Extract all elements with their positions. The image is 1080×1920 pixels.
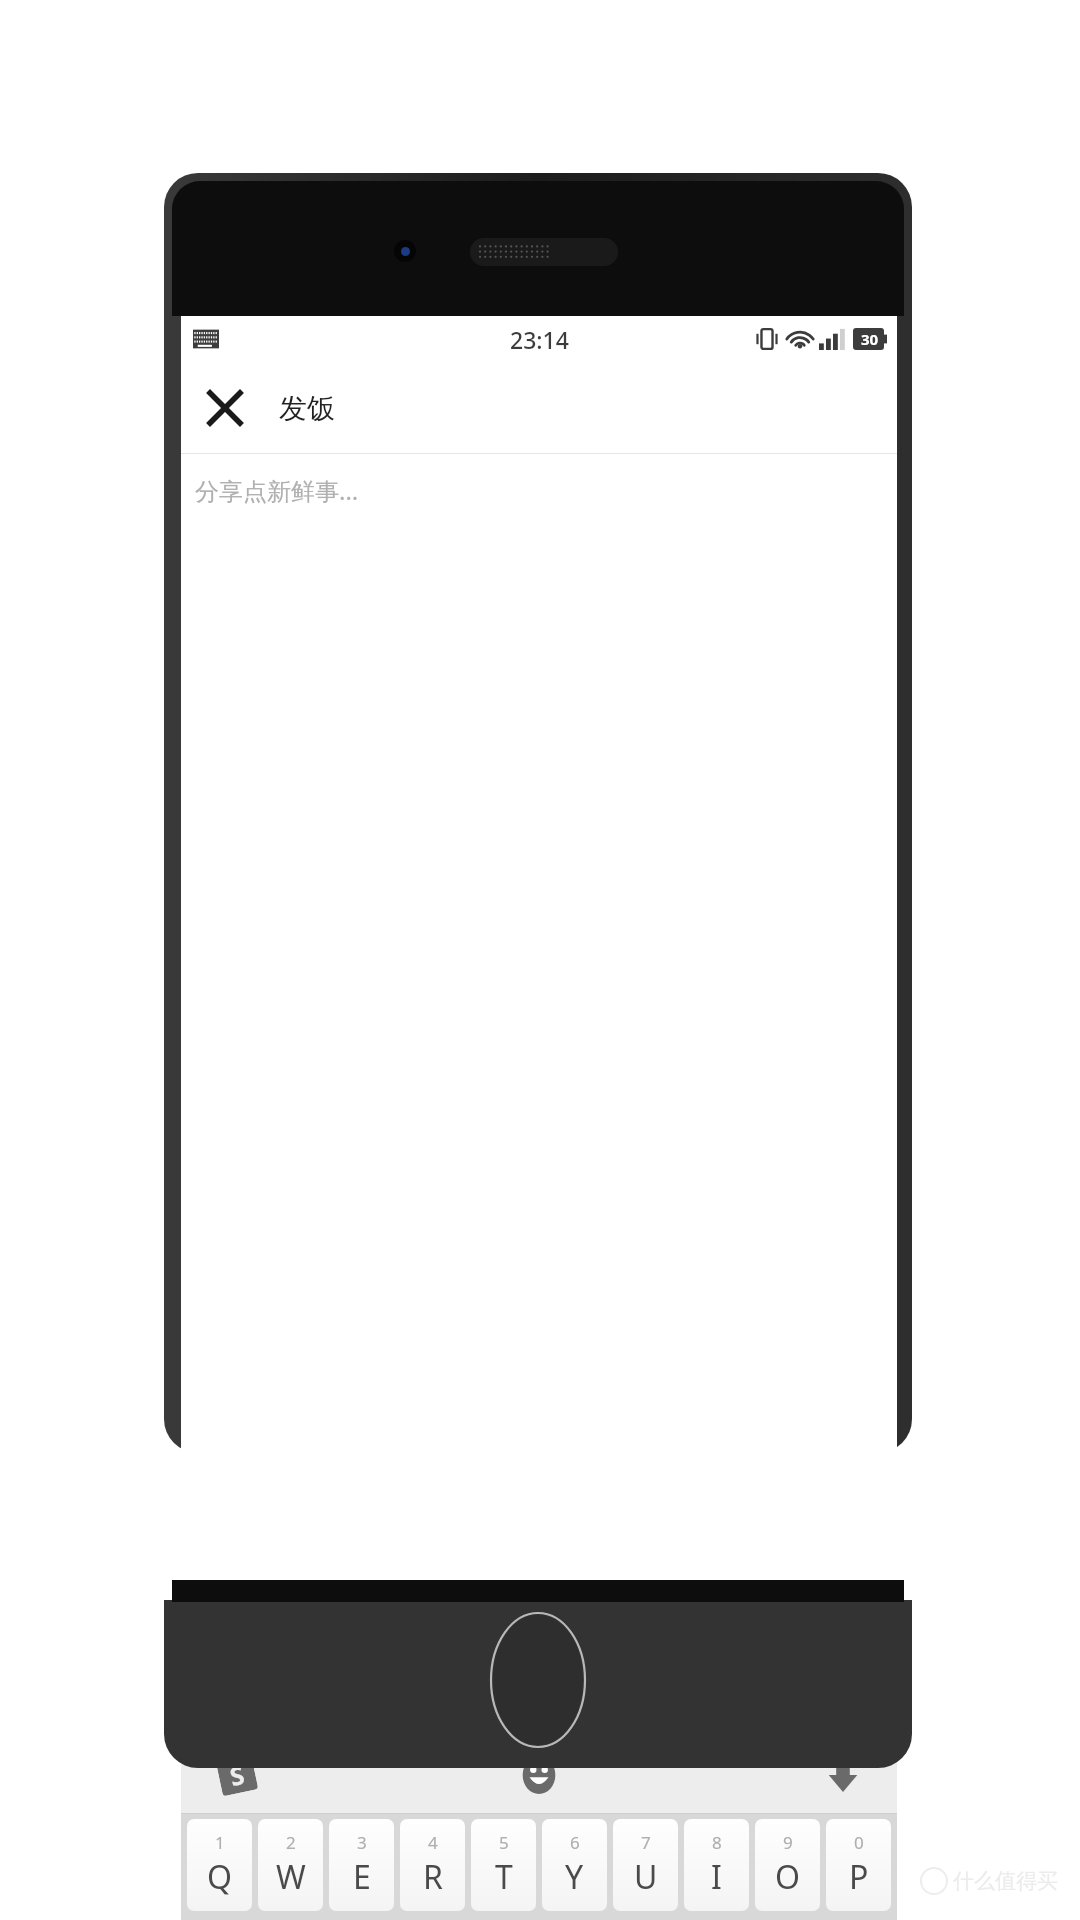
staticText: S bbox=[227, 1757, 247, 1793]
button[interactable]: 9 bbox=[755, 1819, 820, 1911]
staticText: Y bbox=[565, 1855, 584, 1899]
staticText: U bbox=[634, 1855, 658, 1899]
button[interactable]: Close bbox=[199, 382, 251, 434]
staticText: 分享点新鲜事... bbox=[195, 474, 359, 507]
staticText: 6 bbox=[570, 1831, 580, 1854]
staticText: 什么值得买 bbox=[953, 1868, 1058, 1894]
staticText: O bbox=[775, 1855, 800, 1899]
staticText: 8 bbox=[712, 1831, 722, 1854]
staticText: 30 bbox=[861, 329, 879, 349]
staticText: 23:14 bbox=[510, 324, 569, 355]
staticText: 2 bbox=[286, 1831, 296, 1854]
button[interactable]: 1 bbox=[187, 1819, 252, 1911]
button[interactable]: Sogou bbox=[213, 1751, 261, 1799]
staticText: 发饭 bbox=[279, 391, 335, 426]
button[interactable]: 5 bbox=[471, 1819, 536, 1911]
button[interactable]: 0 bbox=[826, 1819, 891, 1911]
staticText: I bbox=[711, 1855, 722, 1899]
staticText: 3 bbox=[357, 1831, 367, 1854]
staticText: 5 bbox=[499, 1831, 509, 1854]
staticText: E bbox=[353, 1855, 371, 1899]
staticText: 7 bbox=[641, 1831, 651, 1854]
button[interactable]: 3 bbox=[329, 1819, 394, 1911]
staticText: 9 bbox=[783, 1831, 793, 1854]
staticText: R bbox=[423, 1855, 443, 1899]
staticText: 4 bbox=[428, 1831, 438, 1854]
button[interactable]: 4 bbox=[400, 1819, 465, 1911]
button[interactable]: 6 bbox=[542, 1819, 607, 1911]
button[interactable]: 2 bbox=[258, 1819, 323, 1911]
button[interactable]: 7 bbox=[613, 1819, 678, 1911]
staticText: P bbox=[849, 1855, 869, 1899]
staticText: 0 bbox=[854, 1831, 864, 1854]
staticText: W bbox=[276, 1855, 306, 1899]
button[interactable]: Hide keyboard bbox=[819, 1751, 867, 1799]
staticText: T bbox=[495, 1855, 513, 1899]
button[interactable]: Emoji bbox=[515, 1751, 563, 1799]
staticText: Q bbox=[207, 1855, 232, 1899]
staticText: 1 bbox=[215, 1831, 225, 1854]
button[interactable]: 8 bbox=[684, 1819, 749, 1911]
